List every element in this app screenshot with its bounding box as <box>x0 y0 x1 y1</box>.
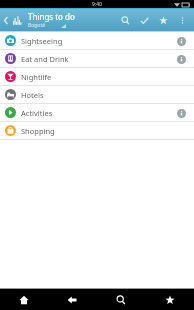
staticText: Things to do <box>28 11 75 22</box>
button[interactable]: Activities <box>0 104 194 121</box>
button[interactable]: Favorites <box>145 289 194 310</box>
staticText: Activities <box>21 108 53 118</box>
button[interactable]: Home <box>0 289 48 310</box>
button[interactable]: Back <box>2 12 10 28</box>
button[interactable]: Search <box>116 9 135 31</box>
staticText: Hotels <box>21 90 44 100</box>
button[interactable]: Nightlife <box>0 68 194 85</box>
button[interactable]: Info about Eat and Drink <box>174 52 188 66</box>
staticText: Bogotá <box>28 22 45 29</box>
staticText: Sightseeing <box>21 36 63 46</box>
button[interactable]: Hotels <box>0 86 194 103</box>
staticText: Eat and Drink <box>21 54 69 64</box>
button[interactable]: Info about Sightseeing <box>174 34 188 48</box>
button[interactable]: Sightseeing <box>0 32 194 49</box>
button[interactable]: Favorites <box>154 9 173 31</box>
button[interactable]: Eat and Drink <box>0 50 194 67</box>
staticText: Nightlife <box>21 72 52 82</box>
button[interactable]: App icon <box>10 13 24 27</box>
button[interactable]: Edit <box>135 9 154 31</box>
button[interactable]: Back <box>48 289 96 310</box>
staticText: 9:40 <box>92 1 102 8</box>
staticText: Shopping <box>21 126 55 136</box>
button[interactable]: Info about Activities <box>174 106 188 120</box>
button[interactable]: Shopping <box>0 122 194 139</box>
button[interactable]: Search <box>96 289 145 310</box>
button[interactable]: More options <box>173 9 192 31</box>
